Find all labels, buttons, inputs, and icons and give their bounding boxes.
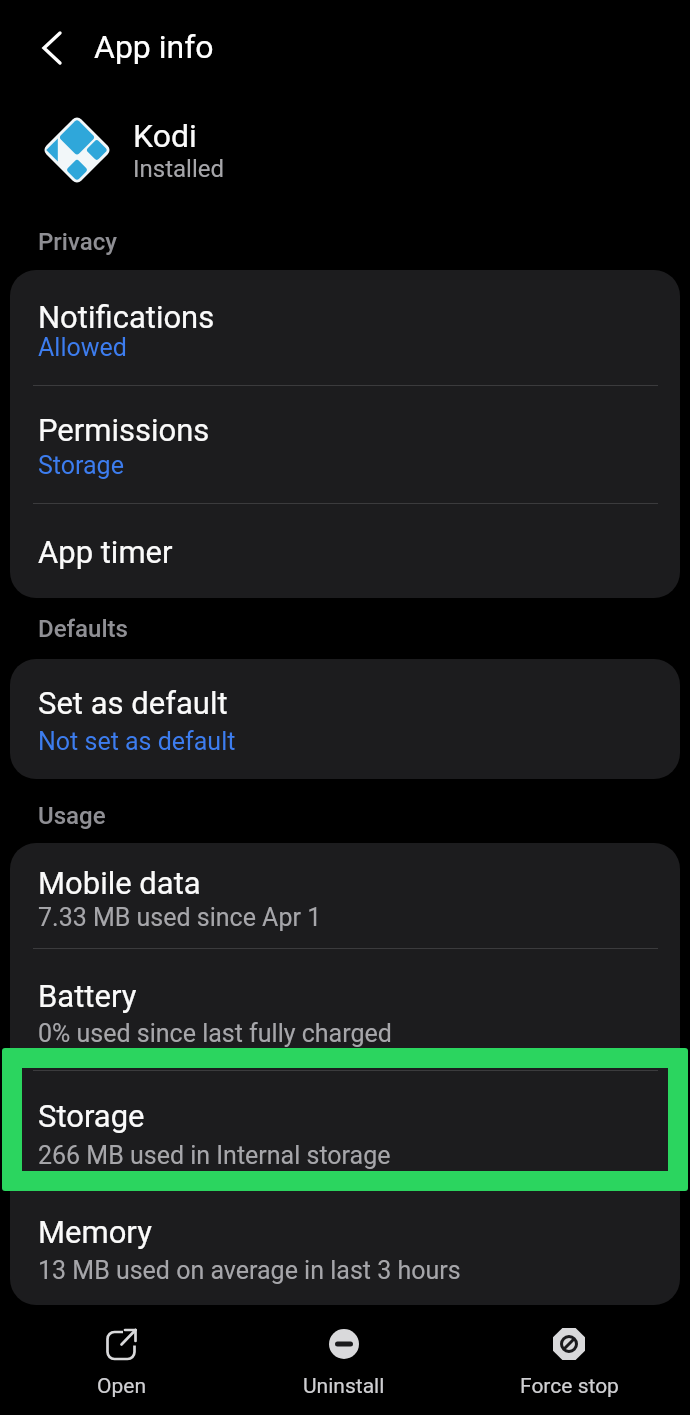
staticText: Usage [38,802,106,830]
staticText: 0% used since last fully charged [38,1019,392,1048]
staticText: Open [97,1374,146,1399]
button[interactable] [30,26,74,70]
staticText: Force stop [520,1374,619,1399]
staticText: Defaults [38,615,128,643]
staticText: Memory [38,1214,152,1250]
staticText: Storage [38,451,124,480]
staticText: App info [94,28,214,66]
staticText: Privacy [38,228,117,256]
staticText: Allowed [38,333,127,362]
button[interactable] [42,115,112,185]
button[interactable]: Force stop [499,1318,639,1408]
staticText: Storage [38,1098,145,1134]
button[interactable]: Notifications [10,270,680,385]
staticText: Uninstall [303,1374,385,1399]
staticText: Installed [133,155,225,183]
button[interactable]: Memory [10,1191,680,1305]
button[interactable]: Uninstall [274,1318,414,1408]
staticText: 13 MB used on average in last 3 hours [38,1256,461,1285]
staticText: 7.33 MB used since Apr 1 [38,903,322,932]
staticText: Mobile data [38,865,201,901]
staticText: Permissions [38,412,210,448]
staticText: Kodi [133,117,197,155]
button[interactable]: Open [51,1318,191,1408]
button[interactable]: Permissions [10,386,680,503]
button[interactable]: Mobile data [10,843,680,948]
button[interactable]: Storage [10,1071,680,1191]
staticText: Notifications [38,299,215,335]
staticText: App timer [38,534,173,570]
button[interactable]: App timer [10,504,680,598]
staticText: Set as default [38,685,228,721]
button[interactable]: Battery [10,949,680,1070]
staticText: Battery [38,978,137,1014]
button[interactable]: Set as default [10,659,680,779]
staticText: Not set as default [38,727,236,756]
staticText: 266 MB used in Internal storage [38,1141,391,1170]
